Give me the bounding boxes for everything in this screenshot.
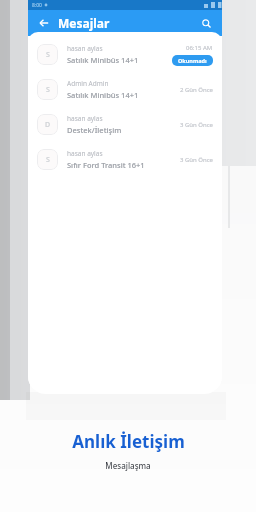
button[interactable]: Back [36,15,52,31]
button[interactable]: S [28,72,222,107]
staticText: Destek/İletişim [67,125,122,135]
staticText: 06:15 AM [186,44,213,52]
staticText: Satılık Minibüs 14+1 [67,90,139,100]
staticText: D [45,120,51,130]
staticText: Anlık İletişim [72,430,185,453]
staticText: 8:00 [32,2,42,9]
staticText: hasan aylas [67,114,103,123]
button[interactable]: S [28,37,222,72]
staticText: Okunmadı [178,57,207,64]
staticText: hasan aylas [67,149,103,158]
staticText: S [46,50,50,60]
staticText: S [46,85,50,95]
staticText: 3 Gün Önce [180,121,213,129]
staticText: Mesajlaşma [105,460,151,471]
staticText: Admin Admin [67,79,109,88]
staticText: hasan aylas [67,44,103,53]
staticText: Mesajlar [58,15,110,31]
staticText: S [46,155,50,165]
button[interactable]: D [28,107,222,142]
staticText: 2 Gün Önce [180,86,213,94]
staticText: Satılık Minibüs 14+1 [67,55,139,65]
staticText: Sıfır Ford Transit 16+1 [67,160,145,170]
button[interactable]: Search [198,15,214,31]
staticText: 3 Gün Önce [180,156,213,164]
button[interactable]: S [28,142,222,177]
